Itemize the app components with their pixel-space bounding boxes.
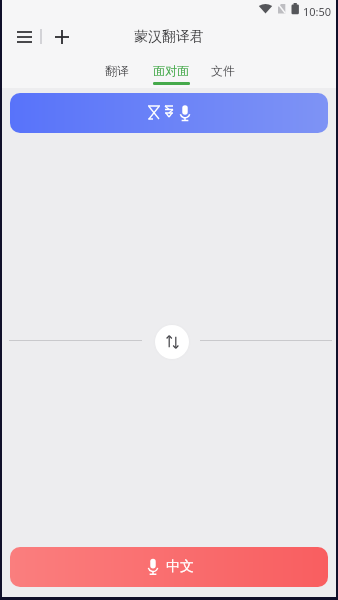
staticText: 10:50 [303,4,332,19]
staticText: 蒙汉翻译君 [134,28,204,46]
staticText: 文件 [211,63,235,78]
button[interactable]: 中文 [10,547,328,587]
staticText: 翻译 [105,63,129,78]
button[interactable] [155,325,189,359]
button[interactable]: 翻译 [91,60,143,80]
button[interactable]: 面对面 [145,60,197,80]
button[interactable] [48,24,76,50]
staticText: 面对面 [153,63,189,78]
button[interactable] [10,93,328,133]
staticText: 中文 [166,558,194,576]
button[interactable]: 文件 [197,60,249,80]
button[interactable] [8,24,42,50]
